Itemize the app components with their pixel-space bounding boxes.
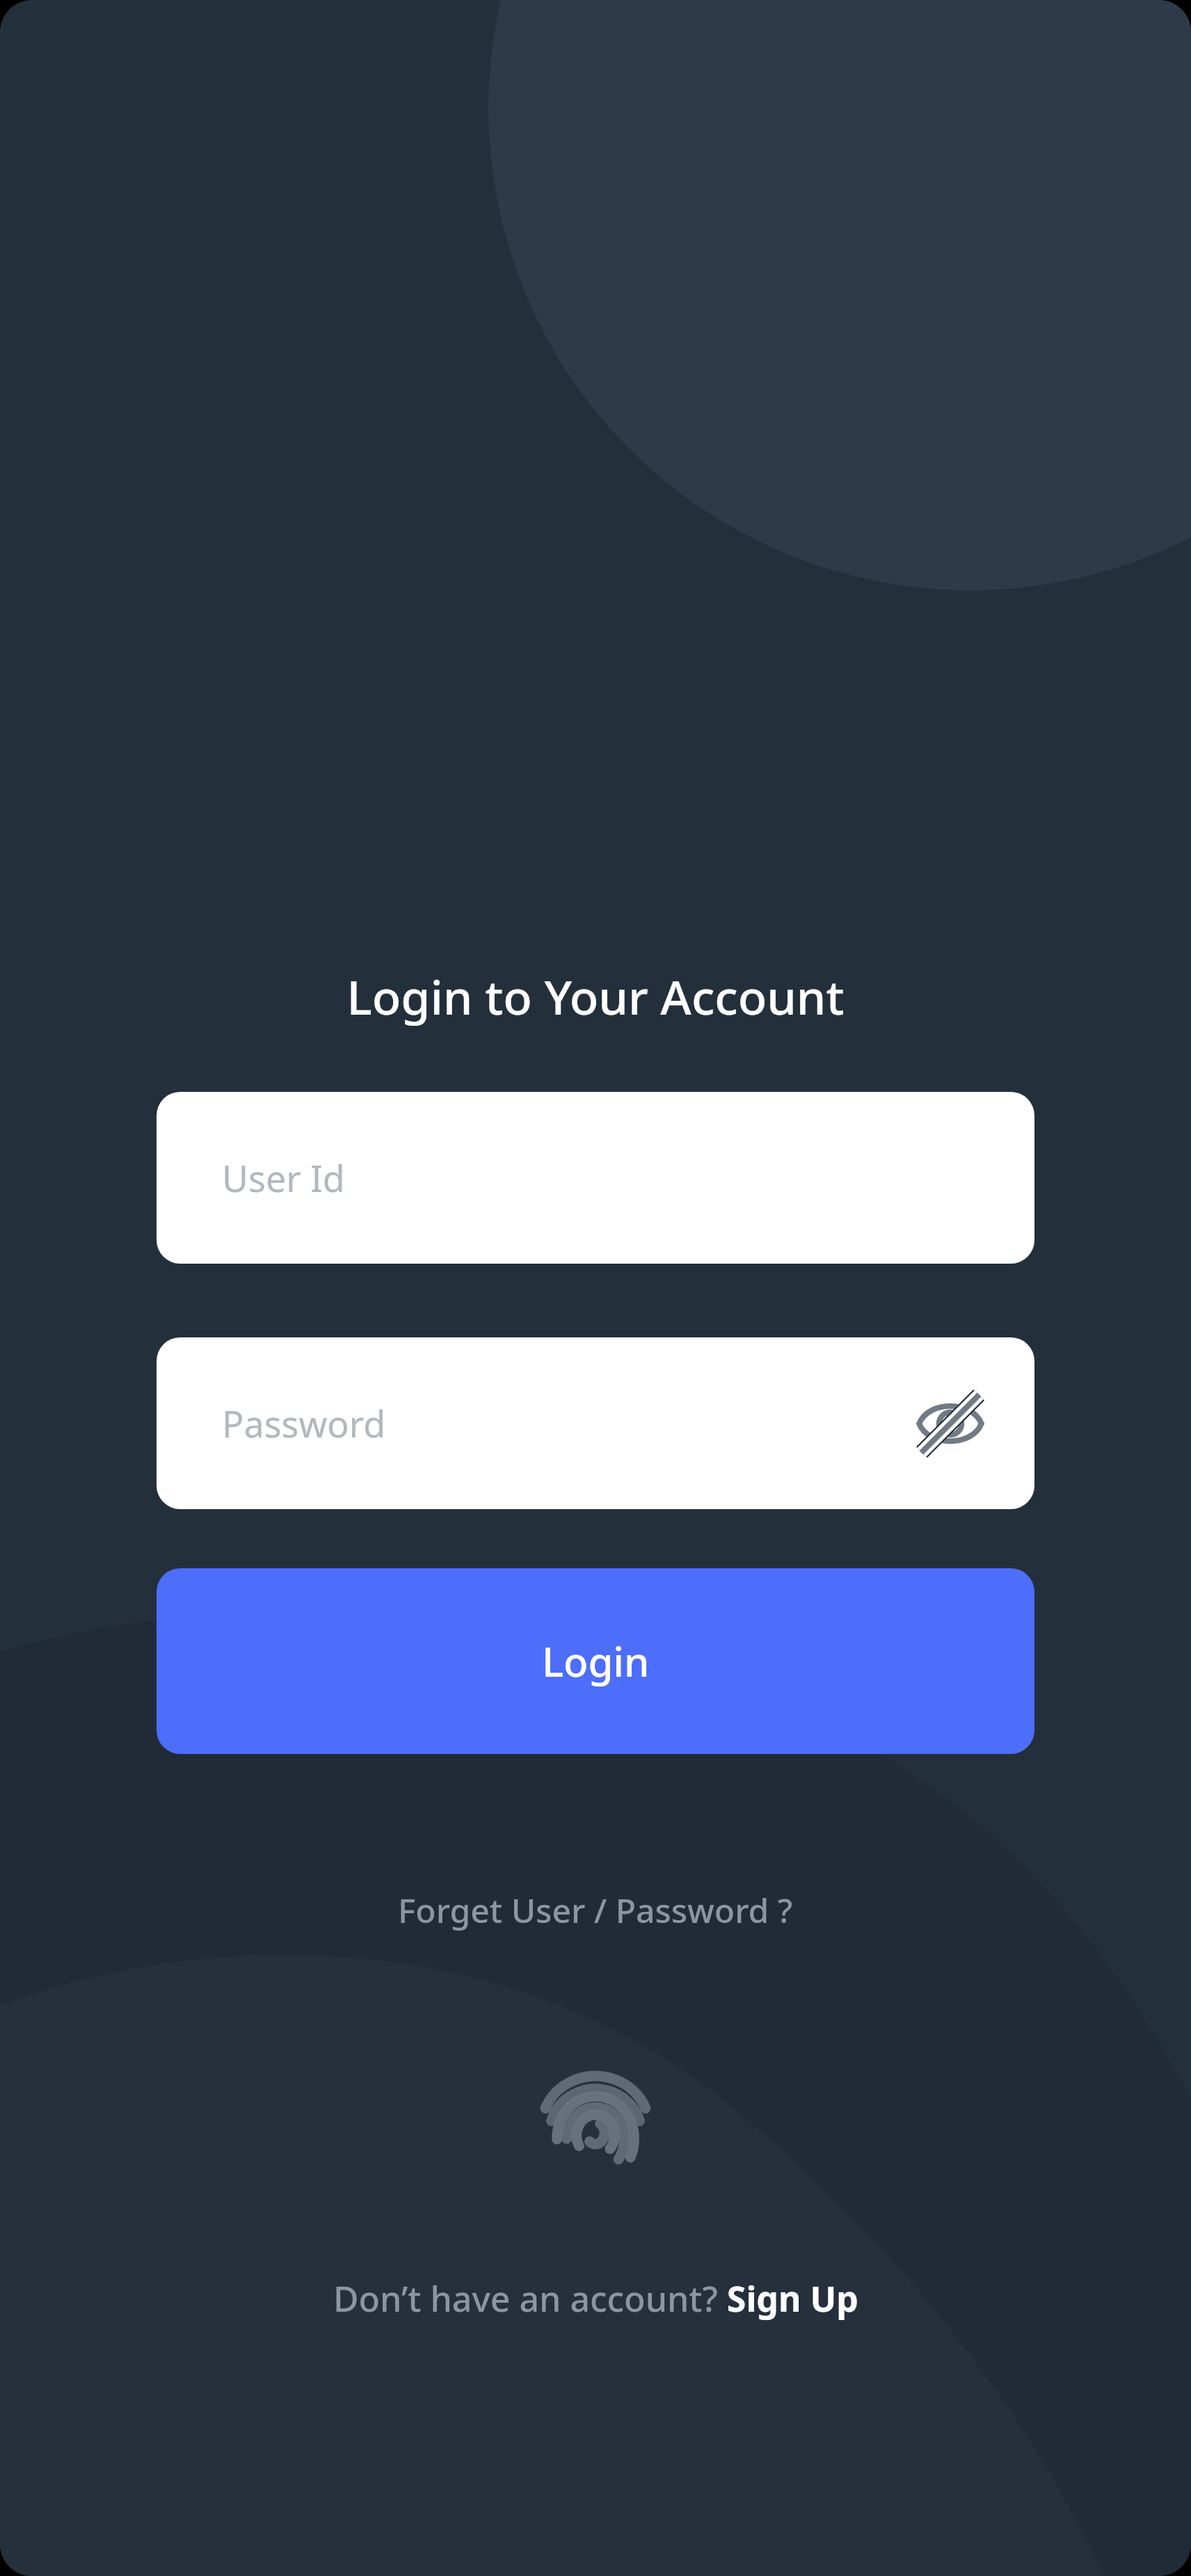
staticText: Password	[222, 1399, 386, 1448]
staticText: Forget User / Password ?	[398, 1887, 793, 1933]
button[interactable]: Login with fingerprint	[529, 2068, 662, 2200]
button[interactable]: Login	[157, 1568, 1034, 1754]
staticText: Don’t have an account? Sign Up	[333, 2275, 858, 2322]
staticText: Login	[542, 1634, 650, 1689]
staticText: User Id	[222, 1153, 345, 1202]
button[interactable]: Forget User / Password ?	[381, 1879, 810, 1941]
staticText: Login to Your Account	[346, 964, 845, 1029]
button[interactable]: Password	[157, 1337, 1034, 1509]
button[interactable]: Don’t have an account? Sign Up	[317, 2267, 875, 2331]
button[interactable]: Show password	[909, 1383, 991, 1465]
button[interactable]: User Id	[157, 1092, 1034, 1264]
